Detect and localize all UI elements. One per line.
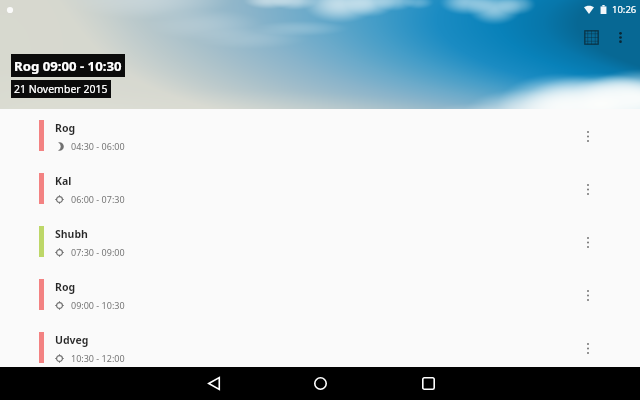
staticText: 09:00 - 10:30: [71, 299, 125, 311]
staticText: Kal: [55, 174, 72, 188]
button[interactable]: Shubh: [0, 215, 640, 268]
button[interactable]: More options: [571, 331, 605, 365]
button[interactable]: Rog: [0, 109, 640, 162]
button[interactable]: Home: [266, 367, 374, 400]
button[interactable]: Back: [158, 367, 266, 400]
staticText: 06:00 - 07:30: [71, 193, 125, 205]
button[interactable]: More options: [571, 172, 605, 206]
staticText: 21 November 2015: [14, 82, 108, 96]
button[interactable]: Udveg: [0, 321, 640, 374]
button[interactable]: Recent apps: [374, 367, 482, 400]
staticText: 10:26: [612, 3, 637, 16]
staticText: Rog 09:00 - 10:30: [14, 57, 122, 75]
button[interactable]: More options: [571, 278, 605, 312]
staticText: 04:30 - 06:00: [71, 140, 125, 152]
staticText: Shubh: [55, 227, 88, 241]
button[interactable]: Rog: [0, 268, 640, 321]
button[interactable]: Calendar view: [578, 24, 605, 51]
staticText: Rog: [55, 280, 76, 294]
button[interactable]: More options: [571, 119, 605, 153]
staticText: 10:30 - 12:00: [71, 352, 125, 364]
button[interactable]: More options: [607, 24, 634, 51]
button[interactable]: More options: [571, 225, 605, 259]
staticText: Rog: [55, 121, 76, 135]
staticText: Udveg: [55, 333, 89, 347]
button[interactable]: Kal: [0, 162, 640, 215]
staticText: 07:30 - 09:00: [71, 246, 125, 258]
